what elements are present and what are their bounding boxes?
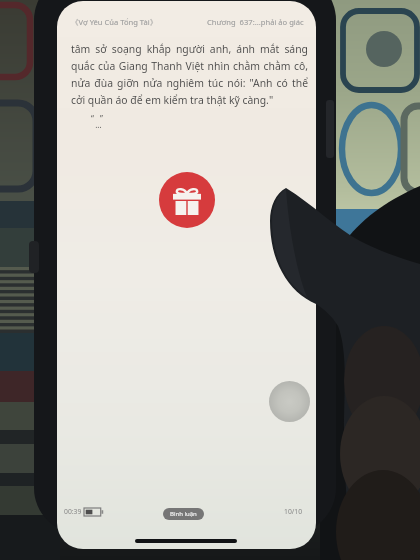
button[interactable]: Reading time: [64, 507, 103, 516]
staticText: Chương 637:...phải ảo giác: [207, 17, 304, 27]
button[interactable]: Menu: [269, 381, 310, 422]
button[interactable]: Gift: [159, 172, 215, 228]
button[interactable]: Bình luận: [163, 508, 204, 520]
button[interactable]: 10/10: [284, 507, 303, 516]
staticText: Bình luận: [170, 510, 197, 518]
staticText: 00:39: [64, 507, 82, 516]
staticText: “ ” ...: [91, 113, 103, 131]
staticText: 《Vợ Yêu Của Tổng Tài》: [71, 17, 158, 27]
staticText: tâm sở soạng khắp người anh, ánh mắt sán…: [71, 42, 308, 107]
